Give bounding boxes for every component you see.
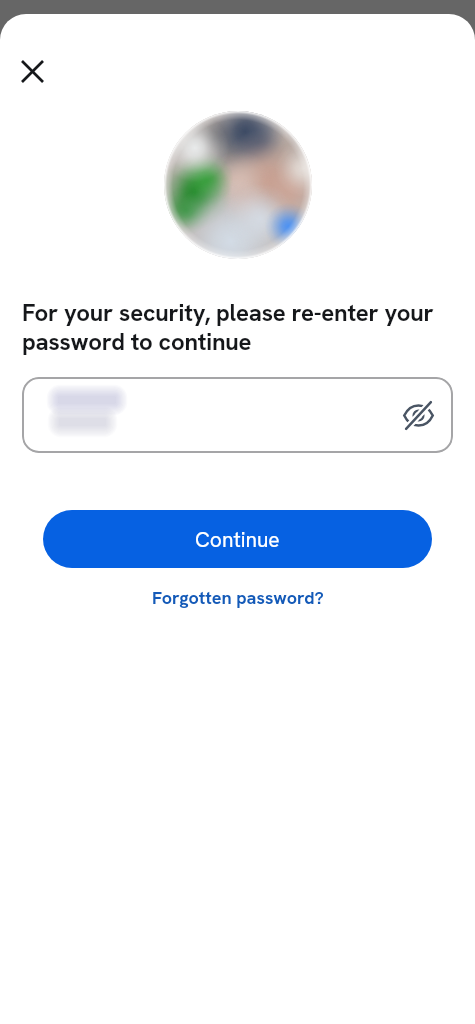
- staticText: Continue: [195, 526, 280, 553]
- button[interactable]: Forgotten password?: [142, 581, 334, 614]
- button[interactable]: Show password: [22, 377, 453, 453]
- button[interactable]: Close: [9, 48, 55, 94]
- button[interactable]: Continue: [43, 510, 432, 568]
- button[interactable]: Show password: [395, 392, 441, 438]
- staticText: For your security, please re-enter your …: [22, 297, 453, 358]
- staticText: Forgotten password?: [152, 586, 324, 609]
